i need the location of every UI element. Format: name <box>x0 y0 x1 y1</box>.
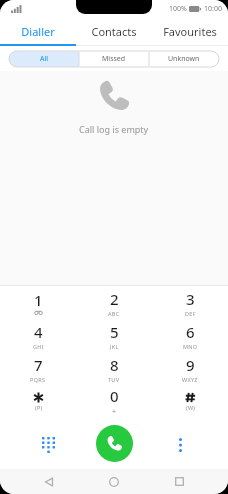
staticText: JKL <box>110 343 119 350</box>
button[interactable]: Unknown <box>149 51 219 67</box>
button[interactable]: 3 <box>152 286 228 319</box>
button[interactable]: All <box>9 51 79 67</box>
staticText: Unknown <box>168 54 200 64</box>
staticText: (W) <box>186 404 196 411</box>
staticText: 2 <box>110 289 119 309</box>
button[interactable]: Contacts <box>76 17 152 46</box>
button[interactable]: Recents <box>163 469 195 494</box>
button[interactable]: Missed <box>79 51 149 67</box>
button[interactable]: Back <box>33 469 65 494</box>
staticText: DEF <box>185 310 196 317</box>
button[interactable]: 5 <box>76 319 152 352</box>
button[interactable]: Favourites <box>152 17 228 46</box>
staticText: 6 <box>186 322 195 342</box>
button[interactable]: Dialler <box>0 17 76 46</box>
staticText: (P) <box>35 404 43 411</box>
staticText: WXYZ <box>182 376 198 383</box>
staticText: 5 <box>110 322 119 342</box>
staticText: 0 <box>110 386 119 406</box>
button[interactable]: Home <box>98 469 130 494</box>
staticText: Call log is empty <box>79 123 149 135</box>
staticText: ABC <box>108 310 120 317</box>
button[interactable]: 4 <box>0 319 76 352</box>
button[interactable]: 6 <box>152 319 228 352</box>
button[interactable]: 7 <box>0 352 76 385</box>
staticText: 4 <box>34 322 43 342</box>
staticText: All <box>40 54 49 64</box>
staticText: Contacts <box>91 24 137 39</box>
staticText: 1 <box>34 290 43 310</box>
staticText: Favourites <box>163 24 217 39</box>
button[interactable]: 8 <box>76 352 152 385</box>
button[interactable]: 9 <box>152 352 228 385</box>
staticText: GHI <box>33 343 44 350</box>
button[interactable]: Call <box>96 425 133 462</box>
staticText: 8 <box>110 355 119 375</box>
button[interactable]: (W) <box>152 385 228 418</box>
staticText: 3 <box>186 289 195 309</box>
staticText: 9 <box>186 355 195 375</box>
staticText: 7 <box>34 355 43 375</box>
button[interactable]: 1 <box>0 286 76 319</box>
button[interactable]: (P) <box>0 385 76 418</box>
button[interactable]: More options <box>165 430 195 460</box>
staticText: Missed <box>102 54 126 64</box>
button[interactable]: Keypad <box>33 430 63 460</box>
staticText: MNO <box>183 343 198 350</box>
button[interactable]: 0 <box>76 385 152 418</box>
staticText: 10:00 <box>204 4 222 14</box>
staticText: 100% <box>169 4 187 14</box>
staticText: PQRS <box>30 376 46 383</box>
button[interactable]: 2 <box>76 286 152 319</box>
staticText: Dialler <box>21 24 55 39</box>
staticText: TUV <box>108 376 120 383</box>
staticText: + <box>112 407 117 417</box>
